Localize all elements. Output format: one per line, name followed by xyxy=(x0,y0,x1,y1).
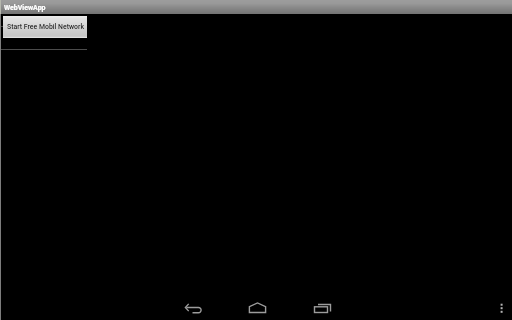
button[interactable]: More options xyxy=(492,296,512,320)
staticText: WebViewApp xyxy=(4,4,46,12)
button[interactable]: Back xyxy=(175,296,209,320)
button[interactable]: Home xyxy=(243,296,273,320)
staticText: Start Free Mobil Network xyxy=(7,23,84,31)
button[interactable]: Recent apps xyxy=(310,296,336,320)
button[interactable]: Start Free Mobil Network xyxy=(1,14,87,38)
